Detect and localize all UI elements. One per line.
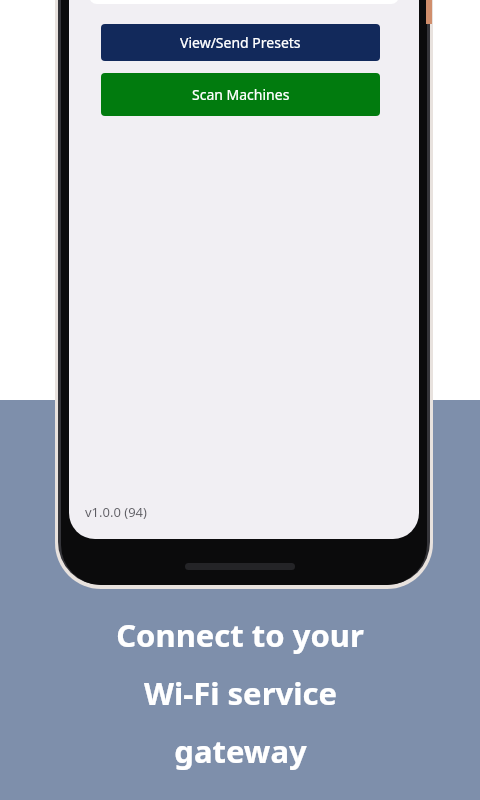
staticText: Scan Machines — [192, 85, 290, 104]
staticText: gateway — [174, 730, 307, 772]
staticText: View/Send Presets — [180, 33, 301, 52]
staticText: v1.0.0 (94) — [85, 503, 147, 521]
button[interactable]: Scan Machines — [101, 73, 380, 116]
button[interactable]: View/Send Presets — [101, 24, 380, 61]
staticText: Wi-Fi service — [144, 672, 337, 714]
staticText: Connect to your — [116, 614, 364, 656]
